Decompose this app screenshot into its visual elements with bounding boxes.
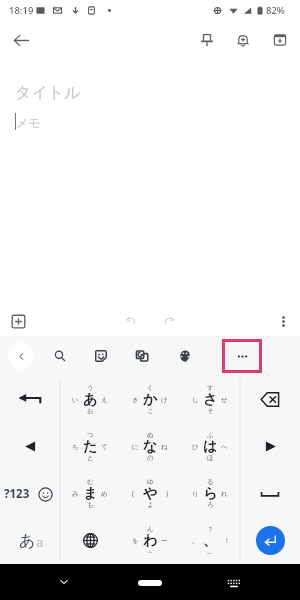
staticText: ゆ xyxy=(147,478,154,486)
button[interactable]: Themes xyxy=(172,343,198,369)
button[interactable]: Home xyxy=(138,580,162,586)
staticText: し xyxy=(192,396,199,404)
staticText: も xyxy=(87,501,94,509)
button[interactable]: Back xyxy=(8,343,34,369)
staticText: 82% xyxy=(266,4,285,17)
button[interactable]: Right xyxy=(240,423,300,470)
staticText: ち xyxy=(72,443,79,451)
staticText: み xyxy=(72,490,79,498)
staticText: ?123 xyxy=(4,486,30,502)
staticText: い xyxy=(72,396,79,404)
button[interactable]: Add xyxy=(5,308,31,334)
staticText: て xyxy=(101,443,108,451)
staticText: な xyxy=(143,438,158,456)
staticText: 。 xyxy=(192,537,199,545)
staticText: わ xyxy=(143,532,158,550)
button[interactable]: Space xyxy=(240,470,300,517)
staticText: ぬ xyxy=(147,431,154,439)
staticText: る xyxy=(207,478,214,486)
staticText: と xyxy=(87,454,94,462)
staticText: に xyxy=(132,443,139,451)
button[interactable]: Emoji xyxy=(36,485,54,503)
staticText: 、 xyxy=(203,532,217,550)
staticText: お xyxy=(87,407,94,415)
staticText: … xyxy=(207,547,213,556)
button[interactable]: Hide keyboard xyxy=(52,570,76,594)
button[interactable]: Archive xyxy=(265,25,295,55)
staticText: は xyxy=(203,438,218,456)
staticText: ( xyxy=(132,489,134,498)
button[interactable]: Search xyxy=(47,343,73,369)
staticText: き xyxy=(132,396,139,404)
button[interactable]: Language xyxy=(60,517,120,564)
staticText: よ xyxy=(147,501,154,509)
button[interactable]: む xyxy=(60,470,120,517)
staticText: ふ xyxy=(207,431,214,439)
staticText: ? xyxy=(209,525,212,534)
staticText: ) xyxy=(166,489,168,498)
staticText: ろ xyxy=(207,501,214,509)
button[interactable]: あ xyxy=(0,517,60,564)
staticText: の xyxy=(147,454,154,462)
button[interactable]: ?123 xyxy=(4,486,30,502)
button[interactable]: Left xyxy=(0,423,60,470)
button[interactable]: Pin xyxy=(192,25,222,55)
button[interactable]: Reminder xyxy=(228,25,258,55)
staticText: ～ xyxy=(147,548,154,556)
button[interactable]: う xyxy=(60,375,120,423)
button[interactable]: す xyxy=(180,375,240,423)
staticText: め xyxy=(101,490,108,498)
staticText: メモ xyxy=(16,115,41,130)
button[interactable]: More options xyxy=(270,308,296,334)
button[interactable]: Translate xyxy=(129,343,155,369)
button[interactable]: More xyxy=(222,339,262,373)
staticText: せ xyxy=(221,396,228,404)
staticText: ひ xyxy=(192,443,199,451)
staticText: ね xyxy=(161,443,168,451)
button[interactable]: く xyxy=(120,375,180,423)
button[interactable]: つ xyxy=(60,423,120,470)
button[interactable]: ゆ xyxy=(120,470,180,517)
staticText: そ xyxy=(207,407,214,415)
staticText: う xyxy=(87,384,94,392)
staticText: つ xyxy=(87,431,94,439)
button[interactable]: Back xyxy=(6,25,36,55)
button[interactable]: Enter xyxy=(256,526,285,555)
staticText: こ xyxy=(147,407,154,415)
staticText: り xyxy=(192,490,199,498)
staticText: ほ xyxy=(207,454,214,462)
button[interactable]: Delete xyxy=(240,375,300,423)
button[interactable]: Backspace xyxy=(0,375,60,423)
staticText: ー xyxy=(161,537,168,545)
button[interactable]: Switch keyboard xyxy=(222,571,246,595)
staticText: を xyxy=(132,537,139,545)
staticText: ! xyxy=(226,536,228,545)
staticText: む xyxy=(87,478,94,486)
button[interactable]: Redo xyxy=(156,308,182,334)
button[interactable]: る xyxy=(180,470,240,517)
staticText: へ xyxy=(221,443,228,451)
staticText: え xyxy=(101,396,108,404)
staticText: a xyxy=(36,533,44,551)
staticText: タイトル xyxy=(15,83,81,103)
staticText: 18:19 xyxy=(9,4,34,17)
staticText: あ xyxy=(83,391,98,409)
button[interactable]: ? xyxy=(180,517,240,564)
button[interactable]: ん xyxy=(120,517,180,564)
button[interactable]: Undo xyxy=(118,308,144,334)
staticText: け xyxy=(161,396,168,404)
staticText: ん xyxy=(147,525,154,533)
staticText: た xyxy=(83,438,98,456)
staticText: す xyxy=(207,384,214,392)
button[interactable]: ふ xyxy=(180,423,240,470)
staticText: く xyxy=(147,384,154,392)
staticText: ま xyxy=(83,485,98,503)
staticText: か xyxy=(143,391,158,409)
staticText: さ xyxy=(203,391,218,409)
staticText: れ xyxy=(221,490,228,498)
staticText: や xyxy=(143,485,158,503)
staticText: あ xyxy=(19,531,36,551)
button[interactable]: Stickers xyxy=(88,343,114,369)
staticText: ら xyxy=(203,485,218,503)
button[interactable]: ぬ xyxy=(120,423,180,470)
